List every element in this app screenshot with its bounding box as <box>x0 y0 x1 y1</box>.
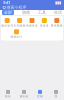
staticText: 全部 <box>4 10 12 15</box>
staticText: 微信读书 <box>1 24 13 27</box>
button[interactable]: 美团外卖 <box>26 18 38 27</box>
staticText: 工具 <box>38 10 46 15</box>
button[interactable]: 滴滴出行 <box>1 29 32 39</box>
button[interactable]: 微信读书 <box>1 18 13 27</box>
staticText: 通讯录 <box>19 95 28 98</box>
button[interactable]: 我 <box>48 90 64 98</box>
staticText: 腾讯视频 <box>51 24 63 27</box>
staticText: 美团外卖 <box>26 24 38 27</box>
staticText: 拼多多 <box>40 24 49 27</box>
button[interactable]: 微信 <box>0 90 16 98</box>
staticText: 滴滴出行 <box>10 35 22 39</box>
staticText: 生活 <box>54 10 62 15</box>
button[interactable]: 拼多多 <box>38 18 51 27</box>
button[interactable]: 腾讯视频 <box>51 18 63 27</box>
staticText: 搜索小程序 <box>6 5 26 10</box>
staticText: 微信 <box>5 95 11 98</box>
button[interactable]: 发现 <box>32 90 48 98</box>
button[interactable]: 京东购物 <box>13 18 26 27</box>
staticText: 游戏 <box>22 10 30 15</box>
staticText: 京东购物 <box>14 24 26 27</box>
staticText: 我 <box>54 95 57 98</box>
staticText: 发现 <box>37 95 43 98</box>
staticText: ▮▮▮ <box>55 0 61 5</box>
button[interactable]: 通讯录 <box>16 90 32 98</box>
staticText: 9:41 <box>3 0 10 5</box>
